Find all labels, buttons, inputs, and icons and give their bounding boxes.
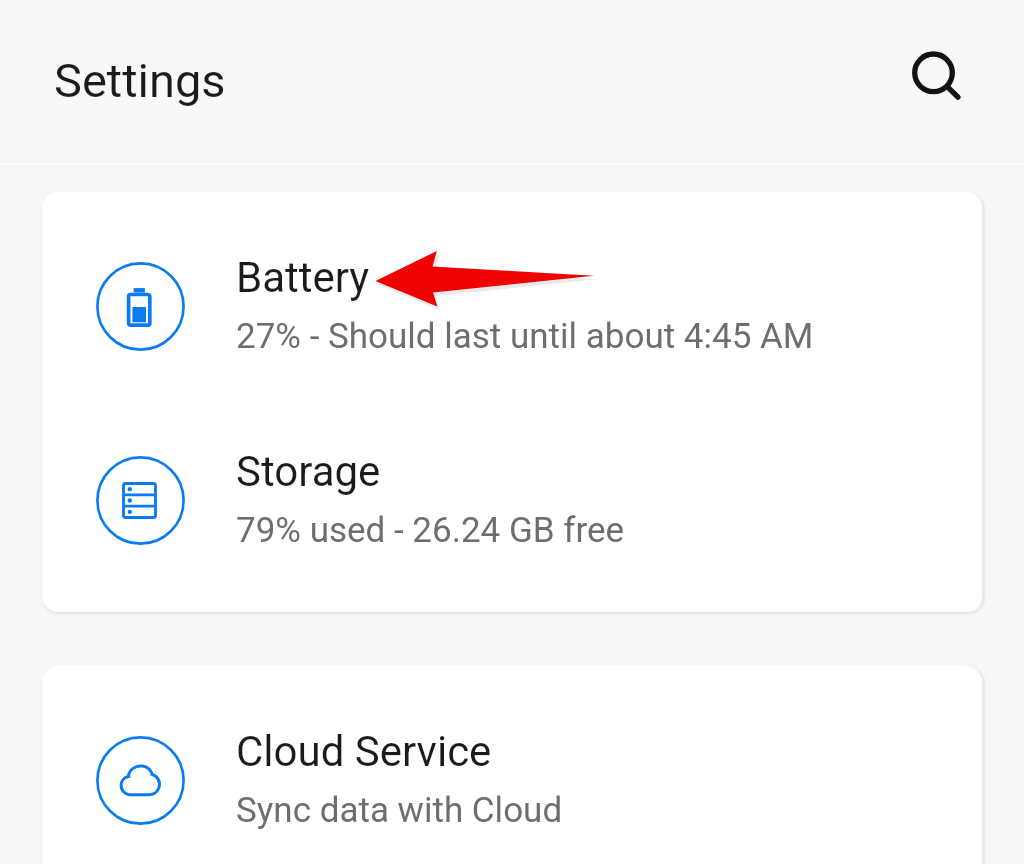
staticText: Sync data with Cloud (236, 790, 563, 831)
staticText: Cloud Service (236, 727, 492, 776)
button[interactable]: Battery (42, 209, 982, 403)
button[interactable]: Search (902, 43, 982, 123)
staticText: Settings (54, 53, 226, 108)
button[interactable]: Storage (42, 403, 982, 597)
button[interactable]: Cloud Service (42, 683, 982, 864)
staticText: Storage (236, 447, 381, 496)
staticText: 79% used - 26.24 GB free (236, 510, 625, 551)
staticText: 27% - Should last until about 4:45 AM (236, 316, 814, 357)
staticText: Battery (236, 253, 370, 302)
